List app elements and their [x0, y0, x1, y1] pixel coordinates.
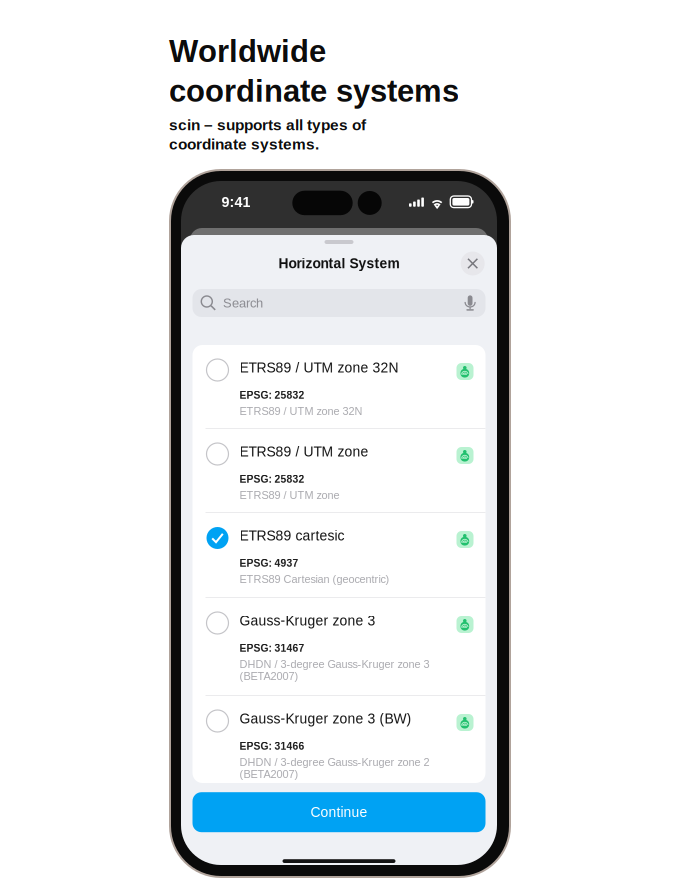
staticText: Gauss-Kruger zone 3: [239, 613, 375, 628]
staticText: scin – supports all types of: [169, 116, 366, 133]
staticText: ETRS89 / UTM zone 32N: [239, 405, 362, 417]
staticText: ETRS89 Cartesian (geocentric): [239, 573, 389, 585]
button[interactable]: Continue: [192, 792, 485, 832]
staticText: coordinate systems: [169, 74, 459, 108]
staticText: Search: [223, 296, 263, 310]
staticText: DHDN / 3-degree Gauss-Kruger zone 3 (BET…: [239, 658, 429, 682]
staticText: coordinate systems.: [169, 135, 319, 153]
staticText: 9:41: [221, 194, 250, 210]
button[interactable]: Close: [461, 251, 485, 275]
staticText: Continue: [310, 804, 367, 820]
button[interactable]: Gauss-Kruger zone 3: [192, 598, 485, 696]
button[interactable]: ETRS89 / UTM zone: [192, 429, 485, 513]
staticText: DHDN / 3-degree Gauss-Kruger zone 2 (BET…: [239, 756, 429, 780]
staticText: EPSG: 25832: [239, 473, 304, 485]
button[interactable]: ETRS89 / UTM zone 32N: [192, 345, 485, 429]
staticText: EPSG: 4937: [239, 557, 298, 569]
staticText: Horizontal System: [278, 256, 399, 271]
staticText: EPSG: 31467: [239, 642, 304, 654]
staticText: ETRS89 / UTM zone: [239, 444, 368, 459]
staticText: ETRS89 cartesic: [239, 528, 344, 543]
staticText: ETRS89 / UTM zone 32N: [239, 360, 398, 375]
staticText: ETRS89 / UTM zone: [239, 489, 339, 501]
staticText: EPSG: 25832: [239, 389, 304, 401]
staticText: Worldwide: [169, 34, 326, 69]
staticText: EPSG: 31466: [239, 740, 304, 752]
button[interactable]: ETRS89 cartesic: [192, 513, 485, 598]
staticText: Gauss-Kruger zone 3 (BW): [239, 711, 411, 726]
button[interactable]: Gauss-Kruger zone 3 (BW): [192, 696, 485, 783]
